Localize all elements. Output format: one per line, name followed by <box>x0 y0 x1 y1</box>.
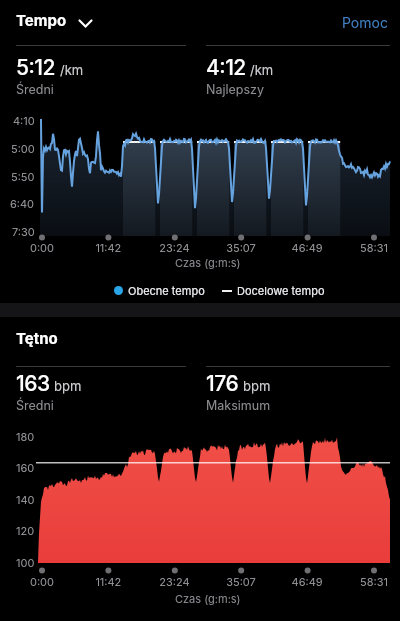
button[interactable]: Tempo <box>16 11 93 29</box>
staticText: /km <box>60 62 84 78</box>
staticText: Tętno <box>16 329 58 347</box>
staticText: 4:12 <box>206 55 246 80</box>
staticText: bpm <box>243 378 271 394</box>
staticText: 163 <box>16 371 50 396</box>
staticText: Maksimum <box>206 398 271 413</box>
staticText: Obecne tempo <box>128 284 205 297</box>
button[interactable]: Pomoc <box>342 14 388 31</box>
staticText: 5:12 <box>16 55 56 80</box>
staticText: Średni <box>16 82 54 97</box>
staticText: Najlepszy <box>206 82 264 97</box>
staticText: bpm <box>54 378 82 394</box>
staticText: Docelowe tempo <box>237 284 325 297</box>
staticText: Tempo <box>16 11 67 29</box>
staticText: /km <box>250 62 274 78</box>
staticText: 176 <box>206 371 239 396</box>
staticText: Średni <box>16 398 54 413</box>
